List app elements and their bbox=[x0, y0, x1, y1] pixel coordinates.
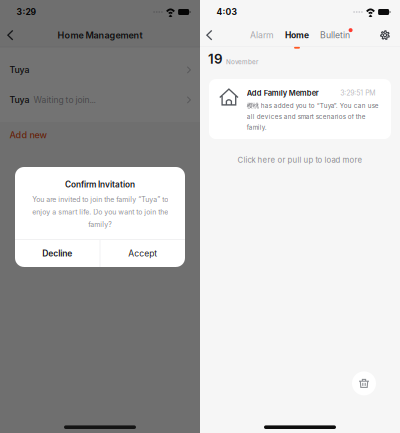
button[interactable]: Add new bbox=[0, 128, 200, 142]
button[interactable]: Home bbox=[285, 23, 309, 47]
staticText: 樱桃 has added you to “Tuya”. You can use … bbox=[247, 102, 379, 131]
staticText: November bbox=[226, 58, 258, 66]
button[interactable]: Tuya bbox=[0, 55, 200, 85]
button[interactable]: Decline bbox=[15, 240, 100, 267]
staticText: 4:03 bbox=[216, 7, 237, 17]
staticText: Alarm bbox=[250, 30, 274, 40]
staticText: Click here or pull up to load more bbox=[237, 155, 362, 165]
button[interactable]: Bulletin bbox=[320, 23, 350, 47]
staticText: Tuya bbox=[9, 95, 29, 105]
staticText: Accept bbox=[128, 248, 157, 259]
staticText: Decline bbox=[42, 248, 72, 259]
staticText: You are invited to join the family “Tuya… bbox=[32, 195, 168, 229]
button[interactable]: Delete bbox=[352, 371, 376, 395]
button[interactable]: Click here or pull up to load more bbox=[237, 152, 362, 168]
button[interactable]: Settings bbox=[377, 24, 393, 46]
staticText: Add Family Member bbox=[247, 88, 319, 97]
staticText: Tuya bbox=[9, 65, 29, 75]
staticText: Waiting to join... bbox=[33, 95, 95, 105]
staticText: 19 bbox=[208, 51, 223, 67]
button[interactable]: Accept bbox=[100, 240, 185, 267]
staticText: Bulletin bbox=[320, 30, 350, 40]
staticText: Home bbox=[285, 30, 309, 40]
button[interactable]: Tuya bbox=[0, 85, 200, 115]
button[interactable]: Add Family Member bbox=[209, 79, 391, 139]
staticText: Add new bbox=[9, 129, 47, 140]
staticText: Home Management bbox=[57, 30, 142, 41]
staticText: Confirm Invitation bbox=[65, 179, 135, 189]
button[interactable]: Back bbox=[201, 24, 217, 46]
button[interactable]: Alarm bbox=[250, 23, 274, 47]
staticText: 3:29:51 PM bbox=[340, 89, 375, 97]
staticText: 3:29 bbox=[16, 7, 36, 17]
button[interactable]: Back bbox=[2, 24, 18, 46]
